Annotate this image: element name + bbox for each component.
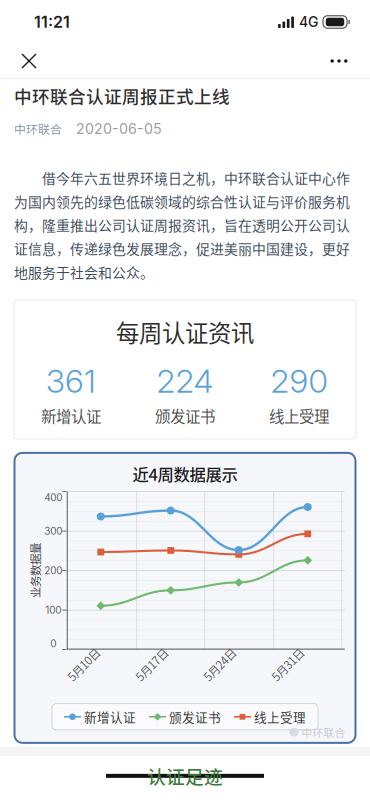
- staticText: 新增认证: [84, 708, 136, 726]
- button[interactable]: Close: [7, 44, 51, 78]
- staticText: 11:21: [34, 12, 70, 32]
- staticText: 300: [44, 525, 62, 537]
- staticText: 0: [50, 637, 56, 650]
- staticText: 中环联合认证周报正式上线: [14, 83, 230, 108]
- staticText: 100: [45, 604, 61, 616]
- staticText: 361: [46, 362, 96, 400]
- staticText: 5月24日: [199, 656, 239, 673]
- staticText: 颁发证书: [155, 404, 215, 427]
- staticText: 224: [156, 362, 213, 400]
- staticText: 290: [270, 362, 327, 400]
- staticText: 线上受理: [269, 404, 329, 427]
- button[interactable]: More: [317, 44, 361, 78]
- staticText: 中环联合: [301, 724, 345, 740]
- staticText: 线上受理: [254, 708, 306, 726]
- staticText: 业务数据量: [8, 562, 63, 579]
- staticText: 4G: [299, 13, 318, 30]
- staticText: 认证足迹: [147, 762, 223, 789]
- staticText: 新增认证: [41, 404, 101, 427]
- staticText: 中环联合: [14, 120, 62, 137]
- staticText: 颁发证书: [169, 708, 221, 726]
- staticText: 每周认证资讯: [116, 315, 254, 349]
- staticText: 近4周数据展示: [132, 462, 237, 485]
- staticText: 2020-06-05: [76, 120, 162, 138]
- staticText: 5月31日: [267, 656, 307, 673]
- staticText: 借今年六五世界环境日之机，中环联合认证中心作为国内领先的绿色低碳领域的综合性认证…: [14, 167, 350, 282]
- staticText: 400: [44, 492, 62, 504]
- staticText: 5月17日: [131, 656, 171, 673]
- staticText: 200: [44, 564, 62, 577]
- staticText: 5月10日: [63, 656, 103, 673]
